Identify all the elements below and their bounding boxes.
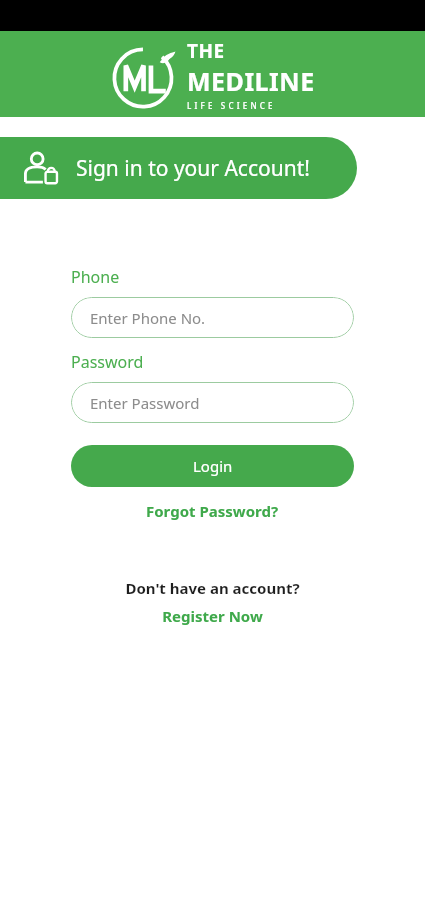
button[interactable]: Login	[71, 445, 354, 487]
staticText: Enter Phone No.	[90, 308, 206, 328]
staticText: Register Now	[162, 606, 263, 626]
button[interactable]: Enter Phone No.	[71, 297, 354, 338]
staticText: Enter Password	[90, 393, 200, 413]
staticText: Login	[193, 456, 233, 476]
staticText: Password	[71, 351, 144, 373]
staticText: Sign in to your Account!	[76, 154, 310, 183]
staticText: MEDILINE	[187, 64, 315, 98]
staticText: Don't have an account?	[125, 578, 300, 598]
other: Account	[22, 149, 60, 187]
other: The Mediline logo	[111, 42, 179, 110]
staticText: LIFE SCIENCE	[187, 100, 276, 111]
button[interactable]: Forgot Password?	[71, 501, 354, 521]
button[interactable]: Enter Password	[71, 382, 354, 423]
button[interactable]: Register Now	[162, 606, 263, 626]
staticText: THE	[187, 38, 225, 64]
button[interactable]: Account	[0, 137, 357, 199]
staticText: Phone	[71, 266, 120, 288]
staticText: Forgot Password?	[146, 501, 279, 521]
